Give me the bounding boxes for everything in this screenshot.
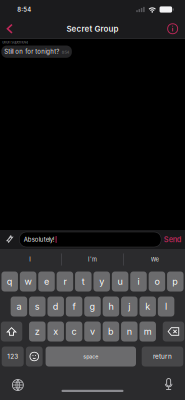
- button[interactable]: We: [124, 249, 185, 270]
- button[interactable]: 123: [2, 346, 24, 366]
- button[interactable]: Delete: [163, 321, 184, 341]
- staticText: x: [53, 326, 58, 337]
- staticText: 8:54: [62, 50, 69, 55]
- staticText: I: [29, 256, 31, 263]
- button[interactable]: o: [149, 271, 165, 291]
- button[interactable]: d: [47, 296, 64, 316]
- button[interactable]: t: [75, 271, 92, 291]
- button[interactable]: space: [46, 346, 136, 366]
- staticText: Send: [164, 235, 182, 244]
- button[interactable]: Group info: [164, 20, 182, 38]
- staticText: Absolutely!: [24, 236, 55, 243]
- staticText: i: [137, 276, 139, 287]
- button[interactable]: m: [139, 321, 156, 341]
- staticText: z: [35, 326, 40, 337]
- staticText: f: [73, 301, 76, 312]
- staticText: 8:54: [17, 6, 31, 13]
- staticText: n: [127, 326, 132, 337]
- button[interactable]: x: [47, 321, 64, 341]
- button[interactable]: j: [121, 296, 138, 316]
- button[interactable]: i: [130, 271, 147, 291]
- staticText: v: [90, 326, 95, 337]
- button[interactable]: p: [167, 271, 184, 291]
- button[interactable]: n: [121, 321, 138, 341]
- staticText: g: [89, 301, 95, 312]
- staticText: Still on for tonight?: [4, 48, 59, 55]
- staticText: y: [99, 276, 104, 287]
- staticText: p: [172, 276, 178, 287]
- staticText: w: [25, 276, 32, 287]
- staticText: r: [63, 276, 66, 287]
- staticText: space: [83, 353, 98, 360]
- staticText: t: [82, 276, 85, 287]
- button[interactable]: Emoji: [26, 346, 43, 366]
- button[interactable]: y: [93, 271, 110, 291]
- button[interactable]: v: [84, 321, 101, 341]
- button[interactable]: k: [139, 296, 156, 316]
- button[interactable]: Dictate: [161, 375, 177, 394]
- staticText: Secret Group: [66, 24, 118, 34]
- button[interactable]: h: [103, 296, 119, 316]
- button[interactable]: z: [29, 321, 46, 341]
- button[interactable]: Shift: [1, 321, 22, 341]
- staticText: orion supernova: [2, 40, 28, 44]
- staticText: c: [72, 326, 77, 337]
- staticText: o: [154, 276, 159, 287]
- staticText: k: [145, 301, 150, 312]
- staticText: h: [108, 301, 113, 312]
- staticText: j: [128, 301, 130, 312]
- button[interactable]: e: [38, 271, 55, 291]
- staticText: e: [44, 276, 49, 287]
- staticText: u: [118, 276, 123, 287]
- button[interactable]: a: [11, 296, 27, 316]
- staticText: b: [108, 326, 114, 337]
- button[interactable]: f: [66, 296, 82, 316]
- button[interactable]: I: [0, 249, 61, 270]
- staticText: I'm: [88, 256, 97, 263]
- staticText: l: [165, 301, 167, 312]
- button[interactable]: Send: [161, 231, 185, 248]
- button[interactable]: Back: [1, 20, 18, 38]
- button[interactable]: b: [103, 321, 119, 341]
- button[interactable]: I'm: [62, 249, 123, 270]
- button[interactable]: Attach: [3, 231, 15, 248]
- button[interactable]: c: [66, 321, 82, 341]
- button[interactable]: s: [29, 296, 46, 316]
- staticText: d: [53, 301, 59, 312]
- staticText: q: [7, 276, 13, 287]
- button[interactable]: q: [1, 271, 18, 291]
- button[interactable]: g: [84, 296, 101, 316]
- button[interactable]: w: [20, 271, 36, 291]
- button[interactable]: u: [112, 271, 128, 291]
- button[interactable]: return: [142, 346, 183, 366]
- button[interactable]: Switch keyboard: [9, 376, 26, 393]
- staticText: s: [35, 301, 40, 312]
- staticText: m: [144, 326, 152, 337]
- staticText: We: [151, 256, 159, 263]
- button[interactable]: r: [57, 271, 73, 291]
- staticText: return: [153, 353, 172, 360]
- staticText: 123: [7, 353, 18, 360]
- button[interactable]: l: [158, 296, 174, 316]
- staticText: a: [16, 301, 21, 312]
